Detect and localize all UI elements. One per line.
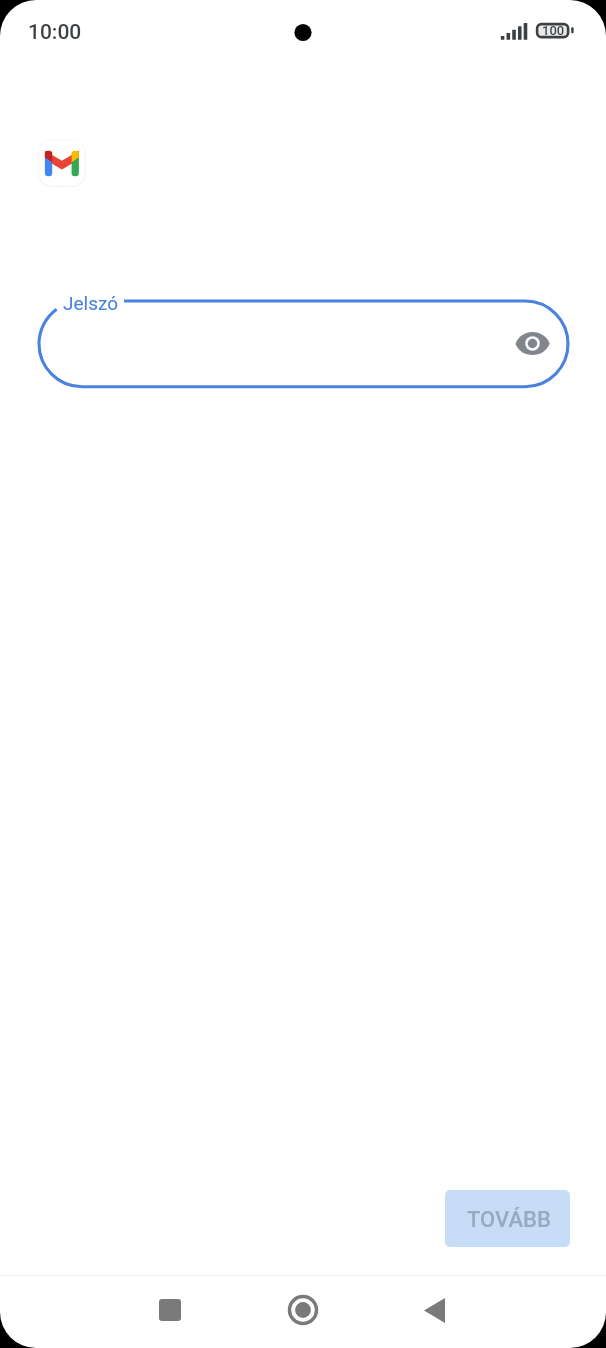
staticText: 10:00	[28, 20, 82, 45]
button[interactable]: Home	[281, 1288, 325, 1332]
staticText: Jelszó	[63, 292, 119, 314]
button[interactable]: Back	[412, 1288, 456, 1332]
button[interactable]: Show password	[508, 319, 556, 367]
button[interactable]: TOVÁBB	[445, 1190, 570, 1247]
staticText: 100	[542, 23, 565, 38]
staticText: TOVÁBB	[467, 1207, 551, 1233]
button[interactable]: Recent apps	[148, 1288, 192, 1332]
